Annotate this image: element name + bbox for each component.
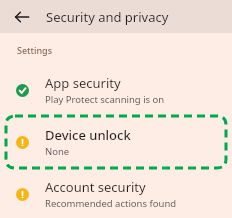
staticText: Settings xyxy=(17,44,53,56)
staticText: Device unlock xyxy=(45,126,131,144)
staticText: App security xyxy=(45,74,121,92)
staticText: Recommended actions found xyxy=(45,197,177,210)
button[interactable]: Device unlock xyxy=(0,113,232,171)
button[interactable]: App security xyxy=(0,67,232,113)
staticText: Play Protect scanning is on xyxy=(45,93,165,106)
staticText: None xyxy=(45,145,70,158)
staticText: Security and privacy xyxy=(46,8,169,26)
button[interactable]: Account security xyxy=(0,171,232,217)
staticText: Account security xyxy=(45,178,146,196)
button[interactable]: Back xyxy=(10,5,34,29)
